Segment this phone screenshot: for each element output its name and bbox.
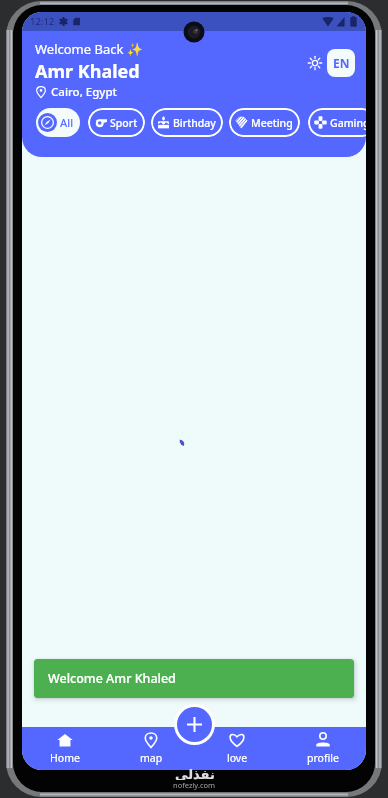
button[interactable]: EN [327,49,355,77]
staticText: Sport [110,116,138,130]
staticText: EN [333,55,350,71]
staticText: love [227,751,248,765]
button[interactable]: map [108,727,194,770]
button[interactable]: Home [22,727,108,770]
button[interactable]: Welcome Amr Khaled [34,659,354,698]
staticText: Cairo, Egypt [51,84,117,100]
staticText: Meeting [251,116,293,130]
staticText: Amr Khaled [35,59,140,84]
button[interactable]: Birthday [151,108,223,137]
staticText: map [140,751,163,765]
button[interactable]: love [194,727,280,770]
button[interactable]: Add [177,707,212,742]
button[interactable]: All [36,108,80,137]
button[interactable]: profile [280,727,366,770]
staticText: All [60,115,74,130]
staticText: نفذلي [175,767,215,780]
staticText: nofezly.com [173,780,216,790]
staticText: Welcome Back ✨ [35,40,143,58]
staticText: profile [307,751,339,765]
button[interactable]: Toggle theme [303,51,327,75]
staticText: Welcome Amr Khaled [48,670,176,687]
button[interactable]: Gaming [308,108,366,137]
button[interactable]: Sport [88,108,145,137]
button[interactable]: Meeting [229,108,300,137]
staticText: 12:12 [30,15,55,28]
staticText: Gaming [330,116,366,130]
staticText: Birthday [173,116,216,130]
staticText: Home [50,751,80,765]
